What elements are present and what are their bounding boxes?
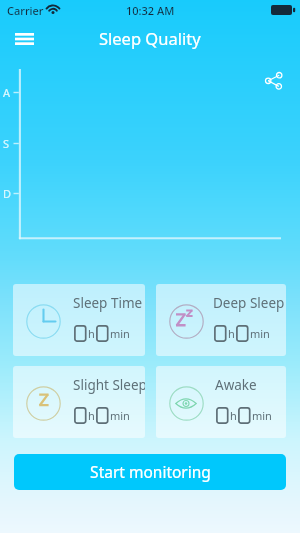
button[interactable]: Awake <box>156 366 286 438</box>
staticText: min <box>252 408 272 423</box>
staticText: h <box>228 326 235 341</box>
staticText: h <box>88 326 95 341</box>
staticText: min <box>250 326 270 341</box>
staticText: Slight Sleep <box>73 376 145 394</box>
button[interactable]: Sleep Time <box>13 284 145 356</box>
staticText: Carrier <box>7 3 44 18</box>
staticText: Sleep Time <box>73 294 143 312</box>
staticText: Sleep Quality <box>99 27 201 49</box>
button[interactable]: Slight Sleep <box>13 366 145 438</box>
staticText: D <box>3 186 12 201</box>
button[interactable]: Menu <box>9 27 41 51</box>
staticText: min <box>110 408 130 423</box>
staticText: Start monitoring <box>90 461 211 482</box>
button[interactable]: Share <box>256 64 290 98</box>
staticText: 10:32 AM <box>126 3 175 18</box>
staticText: h <box>88 408 95 423</box>
staticText: Awake <box>215 376 257 394</box>
staticText: A <box>3 85 11 100</box>
staticText: Deep Sleep <box>213 294 285 312</box>
button[interactable]: Deep Sleep <box>156 284 286 356</box>
button[interactable]: Start monitoring <box>14 454 286 490</box>
staticText: S <box>3 136 10 151</box>
staticText: min <box>110 326 130 341</box>
staticText: h <box>230 408 237 423</box>
